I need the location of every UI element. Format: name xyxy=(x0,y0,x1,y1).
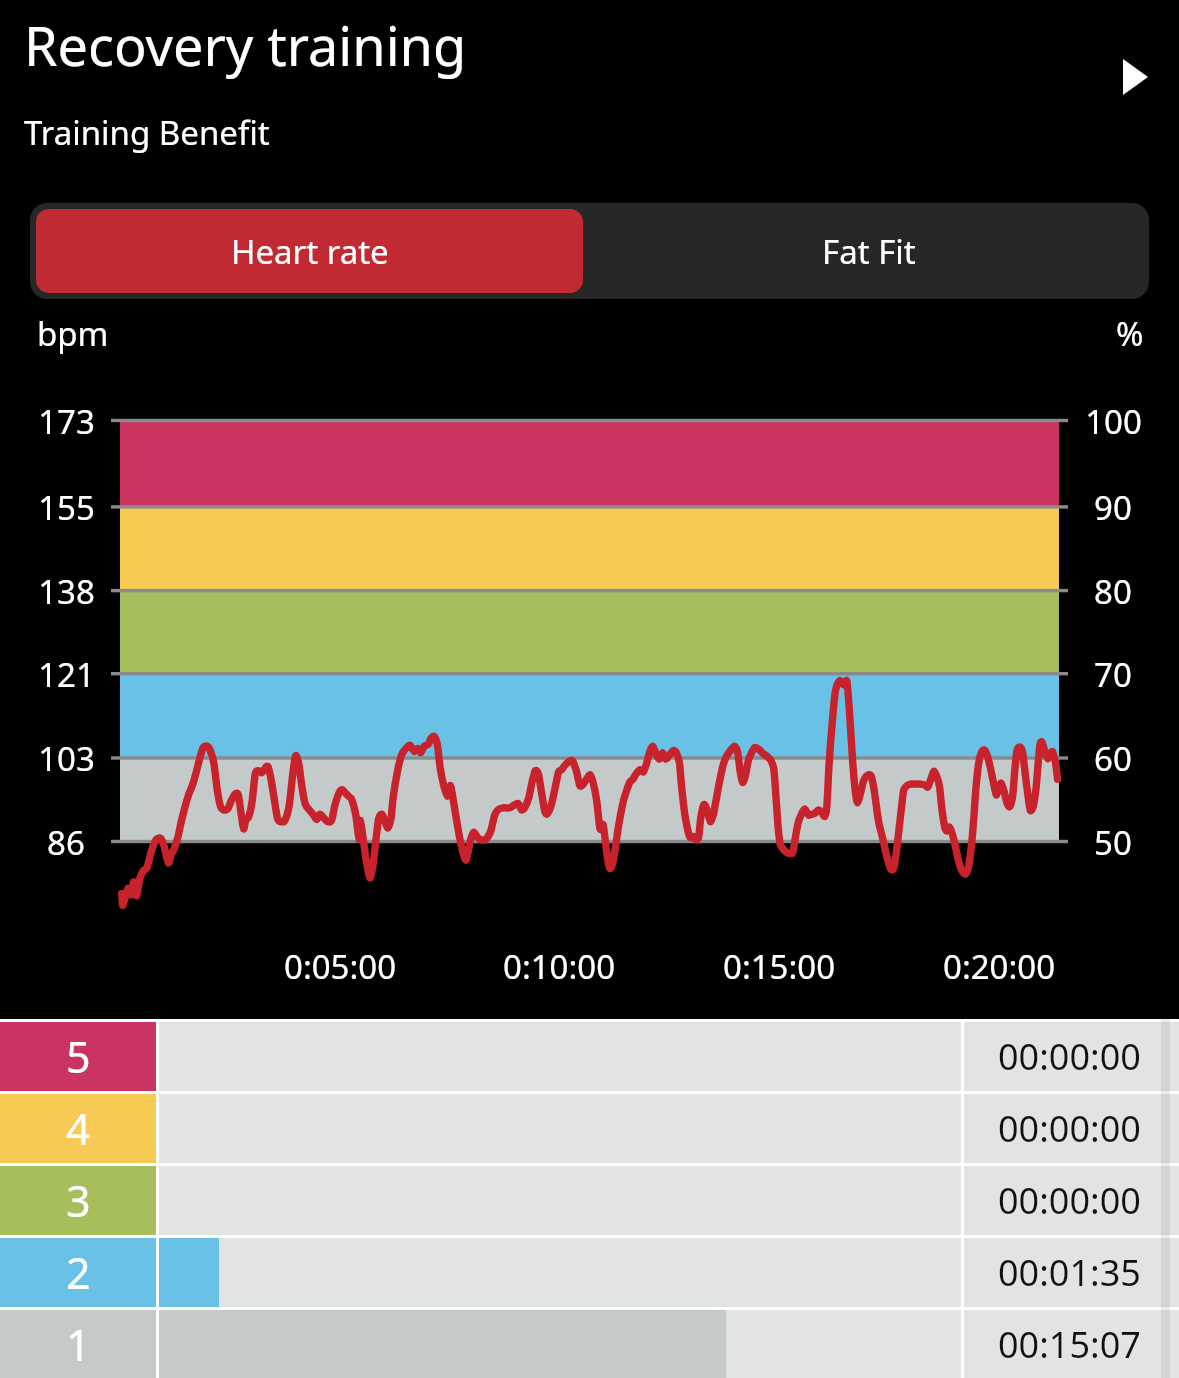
staticText: 00:00:00 xyxy=(998,1104,1141,1153)
staticText: 90 xyxy=(1094,485,1132,530)
staticText: 00:01:35 xyxy=(998,1248,1141,1297)
staticText: 2 xyxy=(66,1243,91,1302)
button[interactable]: 3 xyxy=(0,1166,1179,1235)
staticText: Recovery training xyxy=(24,8,467,82)
staticText: 121 xyxy=(38,652,95,697)
button[interactable]: 5 xyxy=(0,1022,1179,1091)
staticText: Fat Fit xyxy=(822,229,916,274)
staticText: 0:20:00 xyxy=(943,944,1056,989)
staticText: 00:15:07 xyxy=(998,1320,1141,1369)
button[interactable]: 4 xyxy=(0,1094,1179,1163)
button[interactable]: Play xyxy=(1098,40,1172,114)
button[interactable]: 1 xyxy=(0,1310,1179,1378)
staticText: Training Benefit xyxy=(24,110,270,155)
staticText: 155 xyxy=(38,485,95,530)
staticText: 1 xyxy=(66,1315,91,1374)
staticText: 70 xyxy=(1094,652,1132,697)
button[interactable]: 2 xyxy=(0,1238,1179,1307)
staticText: 60 xyxy=(1094,736,1132,781)
staticText: 100 xyxy=(1085,399,1142,444)
staticText: Heart rate xyxy=(231,229,389,274)
staticText: bpm xyxy=(37,311,109,356)
staticText: 80 xyxy=(1094,569,1132,614)
staticText: 00:00:00 xyxy=(998,1176,1141,1225)
staticText: 00:00:00 xyxy=(998,1032,1141,1081)
button[interactable]: Fat Fit xyxy=(589,203,1149,299)
staticText: 173 xyxy=(38,399,95,444)
staticText: 3 xyxy=(66,1171,91,1230)
staticText: % xyxy=(1116,311,1144,356)
staticText: 5 xyxy=(66,1027,91,1086)
staticText: 0:10:00 xyxy=(503,944,616,989)
staticText: 0:05:00 xyxy=(284,944,397,989)
staticText: 86 xyxy=(47,820,85,865)
staticText: 50 xyxy=(1094,820,1132,865)
button[interactable]: Heart rate xyxy=(36,209,583,293)
staticText: 4 xyxy=(66,1099,91,1158)
staticText: 103 xyxy=(38,736,95,781)
staticText: 138 xyxy=(38,569,95,614)
staticText: 0:15:00 xyxy=(723,944,836,989)
